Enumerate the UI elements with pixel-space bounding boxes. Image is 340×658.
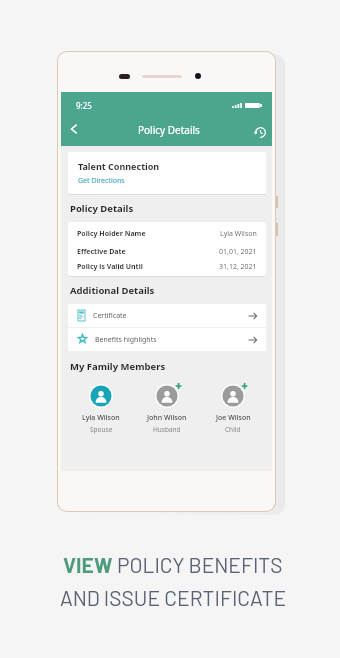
staticText: VIEW bbox=[63, 552, 117, 577]
staticText: Husband bbox=[153, 425, 181, 434]
button[interactable] bbox=[68, 222, 266, 276]
button[interactable]: Back bbox=[61, 116, 87, 142]
staticText: Spouse bbox=[90, 425, 113, 434]
staticText: Get Directions bbox=[78, 176, 125, 186]
staticText: Lyla Wilson bbox=[220, 229, 257, 239]
button[interactable]: Lyla Wilson bbox=[68, 383, 134, 434]
staticText: John Wilson bbox=[147, 413, 187, 423]
button[interactable] bbox=[68, 152, 266, 194]
staticText: Additional Details bbox=[70, 284, 155, 297]
staticText: 9:25 bbox=[76, 100, 92, 111]
staticText: My Family Members bbox=[70, 360, 166, 373]
staticText: Benefits highlights bbox=[95, 335, 157, 345]
staticText: Lyla Wilson bbox=[82, 413, 120, 423]
staticText: AND ISSUE CERTIFICATE bbox=[60, 585, 287, 610]
staticText: POLICY BENEFITS bbox=[117, 552, 283, 577]
staticText: Child bbox=[225, 425, 241, 434]
staticText: 31,12, 2021 bbox=[219, 262, 257, 272]
button[interactable]: Certificate bbox=[68, 304, 266, 327]
button[interactable]: History bbox=[249, 121, 271, 143]
button[interactable]: Joe Wilson bbox=[200, 383, 266, 434]
staticText: 01,01, 2021 bbox=[219, 247, 257, 257]
staticText: Talent Connection bbox=[78, 160, 160, 172]
staticText: Policy Details bbox=[70, 202, 134, 215]
staticText: Effective Date bbox=[77, 247, 126, 257]
button[interactable]: Benefits highlights bbox=[68, 328, 266, 351]
staticText: Policy is Valid Until bbox=[77, 262, 143, 272]
staticText: Joe Wilson bbox=[216, 413, 251, 423]
staticText: Certificate bbox=[93, 311, 127, 321]
staticText: Policy Holder Name bbox=[77, 229, 146, 239]
button[interactable]: John Wilson bbox=[134, 383, 200, 434]
staticText: Policy Details bbox=[138, 123, 200, 137]
